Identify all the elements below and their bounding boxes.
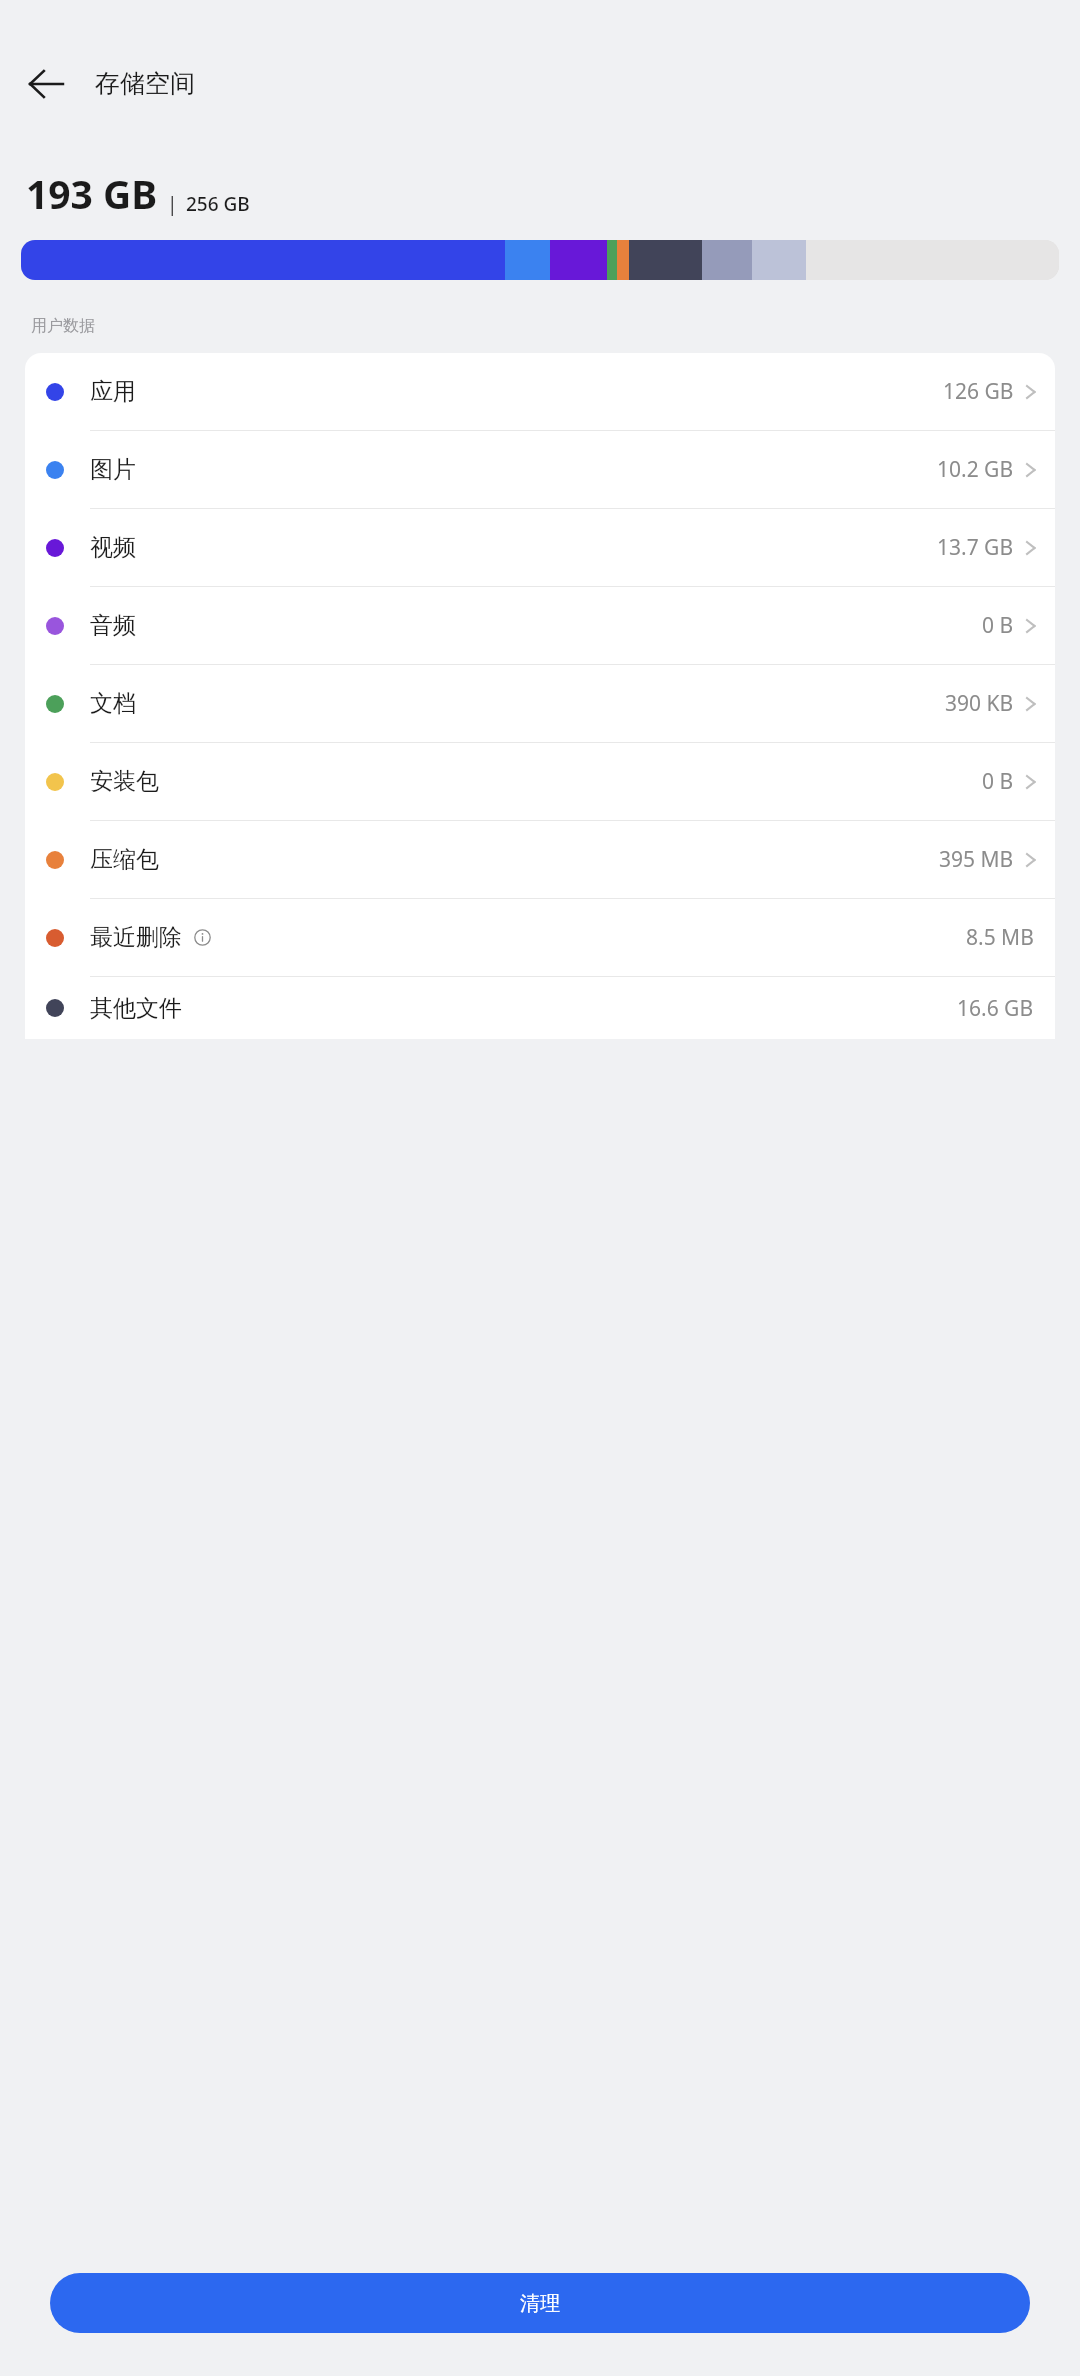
staticText: 图片 [90,455,136,484]
staticText: 10.2 GB [937,455,1014,484]
staticText: 视频 [90,533,136,562]
button[interactable]: 清理 [50,2273,1030,2333]
button[interactable]: 最近删除 [25,899,1055,976]
staticText: 安装包 [90,767,159,796]
staticText: 126 GB [943,377,1014,406]
staticText: 用户数据 [31,316,95,336]
staticText: 0 B [982,611,1014,640]
staticText: 8.5 MB [966,923,1034,952]
button[interactable]: 安装包 [25,743,1055,820]
staticText: 清理 [520,2291,560,2316]
button[interactable]: 图片 [25,431,1055,508]
staticText: 文档 [90,689,136,718]
staticText: 存储空间 [95,68,195,99]
staticText: 395 MB [939,845,1014,874]
staticText: 16.6 GB [957,994,1034,1023]
staticText: 13.7 GB [937,533,1014,562]
staticText: 193 GB [26,167,158,220]
button[interactable]: 音频 [25,587,1055,664]
staticText: 390 KB [945,689,1014,718]
button[interactable]: 其他文件 [25,977,1055,1039]
staticText: 应用 [90,377,136,406]
staticText: 256 GB [186,191,250,217]
staticText: 音频 [90,611,136,640]
staticText: 压缩包 [90,845,159,874]
staticText: | [167,191,178,217]
button[interactable]: 应用 [25,353,1055,430]
button[interactable]: 文档 [25,665,1055,742]
button[interactable]: 视频 [25,509,1055,586]
staticText: 最近删除 [90,923,182,952]
staticText: 其他文件 [90,994,182,1023]
button[interactable]: 压缩包 [25,821,1055,898]
button[interactable]: Back [17,55,75,113]
staticText: 0 B [982,767,1014,796]
